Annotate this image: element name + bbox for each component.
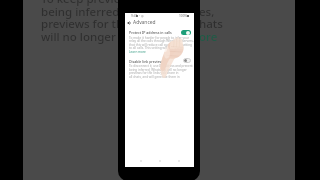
staticText: To keep previews — [41, 0, 135, 7]
staticText: To make it harder for people to infer yo… — [129, 36, 198, 40]
button[interactable]: Turn on — [183, 58, 191, 63]
staticText: hats — [199, 16, 223, 32]
staticText: that this will reduce call quality. This… — [129, 43, 198, 47]
staticText: previews for the l — [41, 16, 136, 32]
staticText: being inferred by — [41, 4, 136, 20]
staticText: will no longer be — [41, 29, 133, 45]
button[interactable]: Protect IP address in calls — [129, 30, 172, 35]
button[interactable]: Disable link previews — [129, 59, 164, 64]
staticText: 9:41 — [131, 14, 138, 18]
button[interactable]: Back — [137, 157, 144, 164]
staticText: Advanced — [133, 19, 156, 26]
staticText: es, — [199, 4, 215, 20]
button[interactable]: Recents — [175, 157, 182, 164]
staticText: relay all the calls through WhatsApp ser… — [129, 39, 198, 43]
staticText: to all calls. This setting will apply to — [129, 46, 180, 50]
staticText: previews for the links you share in — [129, 71, 179, 75]
button[interactable]: Learn more — [129, 50, 146, 54]
button[interactable]: Back — [127, 19, 156, 26]
staticText: being inferred, WhatsApp will no longer … — [129, 68, 198, 72]
button[interactable]: Home — [156, 157, 163, 164]
other: Back — [127, 21, 131, 25]
staticText: ore — [199, 29, 218, 45]
staticText: 100% — [179, 14, 188, 18]
staticText: all chats, and will generate them in — [129, 75, 180, 79]
staticText: • ● — [139, 14, 144, 18]
staticText: To disconnect it, use IP address and pre… — [129, 64, 193, 68]
button[interactable]: Turn off — [181, 30, 191, 35]
